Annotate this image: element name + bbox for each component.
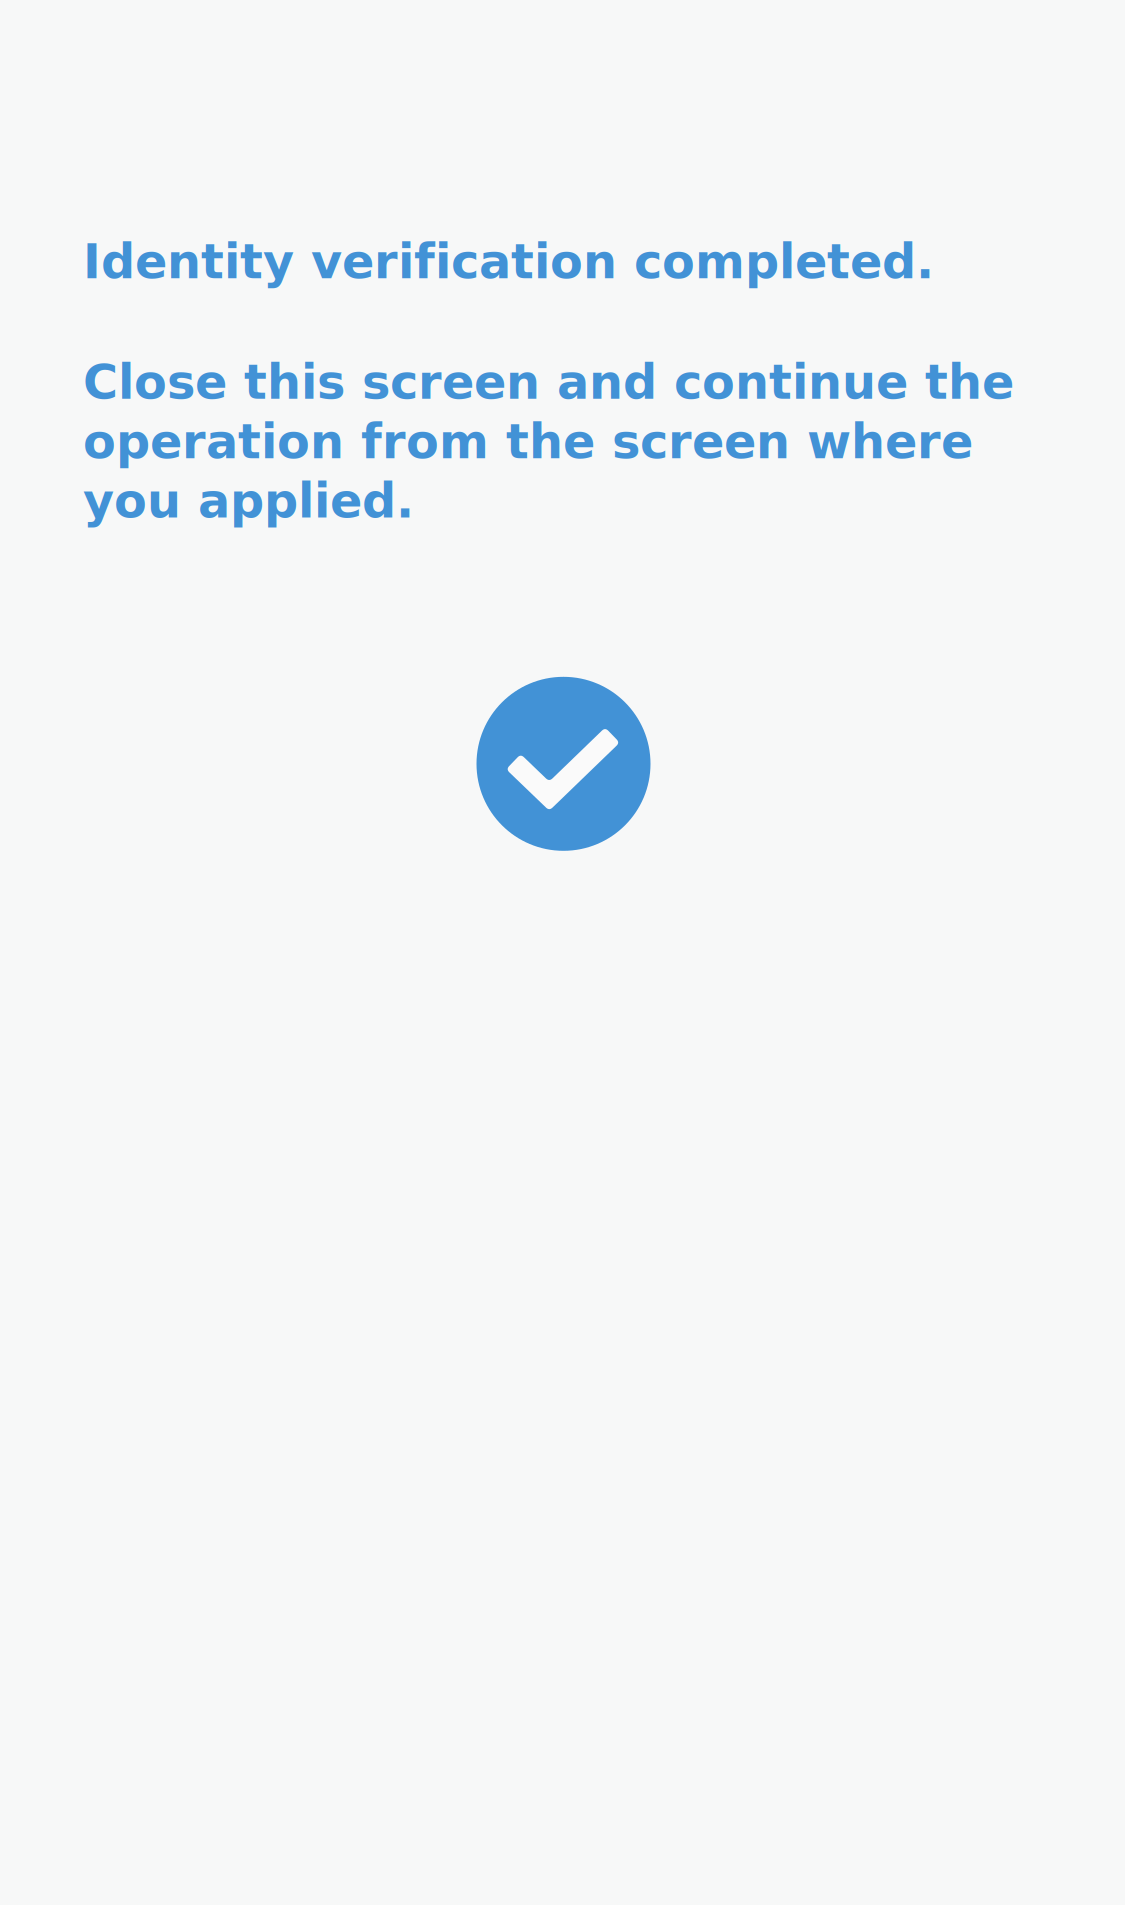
staticText: Identity verification completed. <box>83 232 934 291</box>
staticText: Close this screen and continue the opera… <box>83 352 1014 531</box>
